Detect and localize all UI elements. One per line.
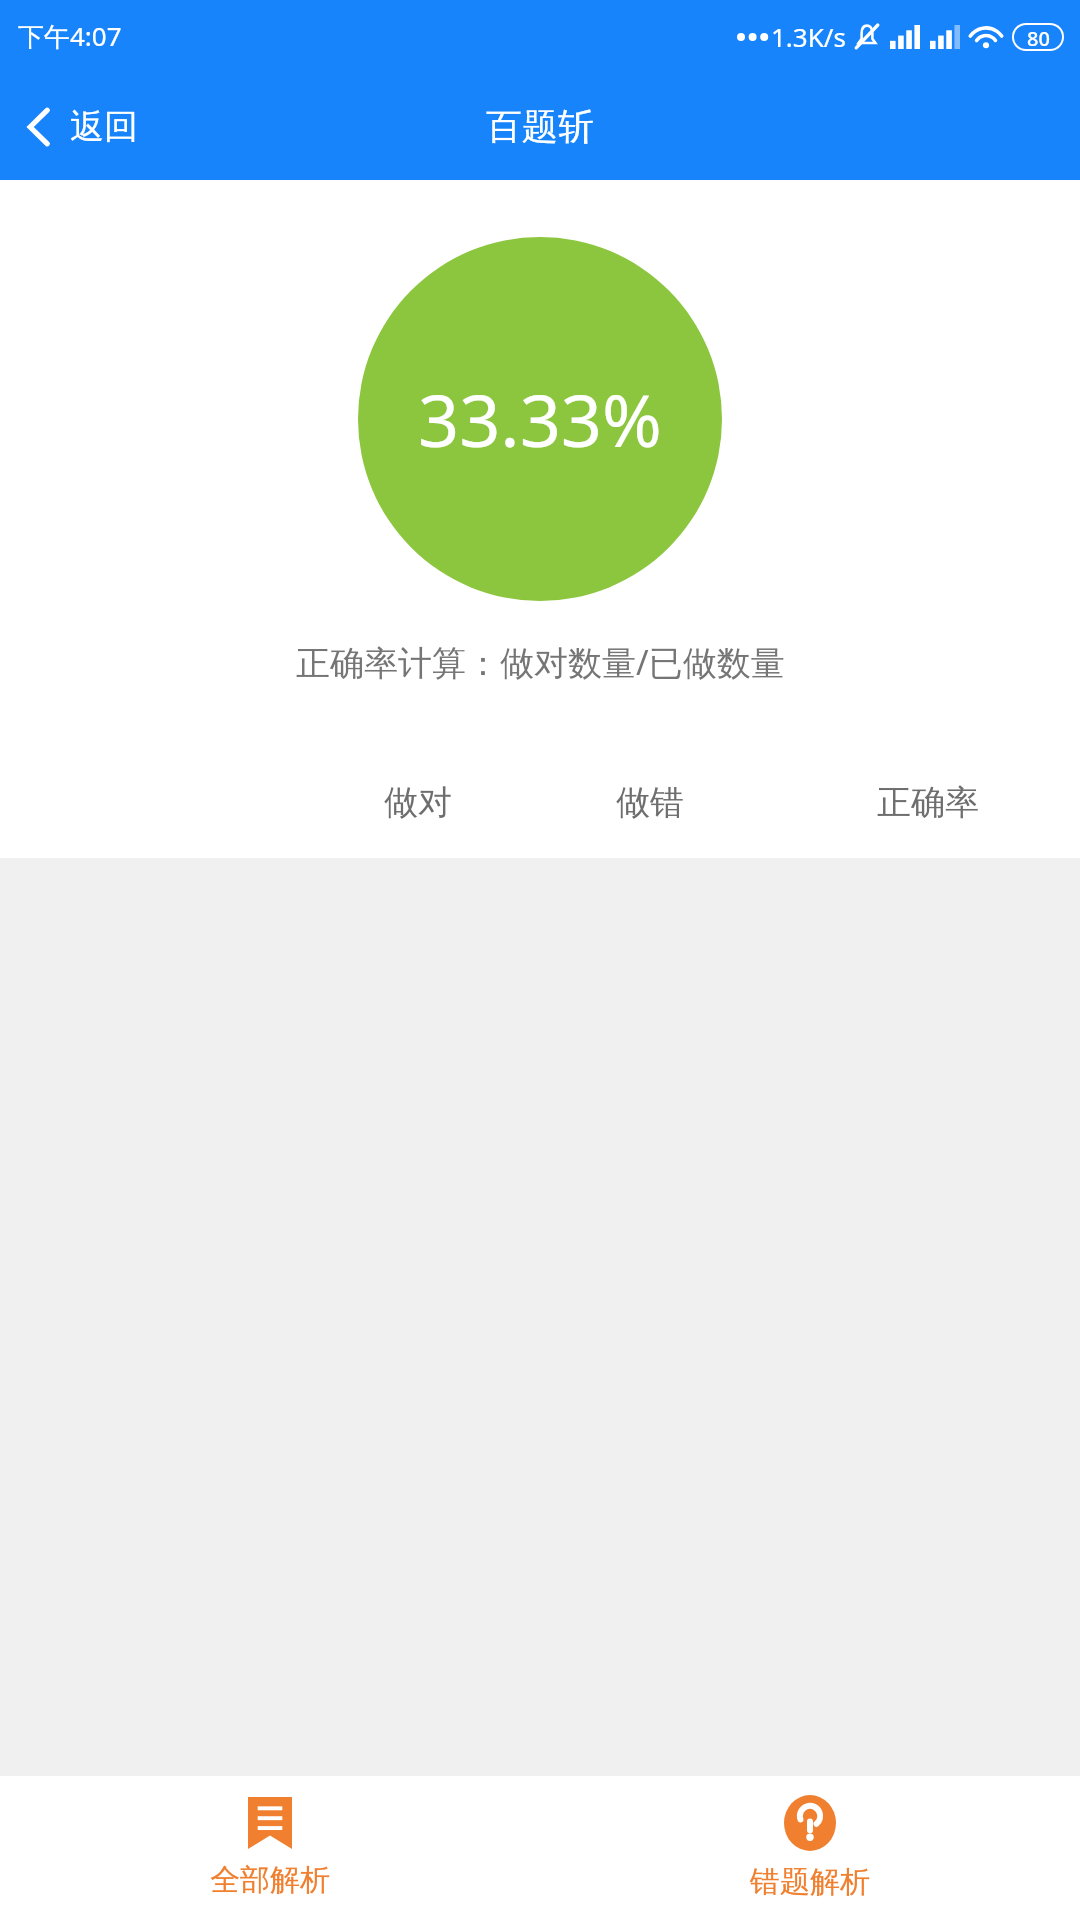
staticText: 1.3K/s [771,19,846,54]
button[interactable]: 错题解析 [540,1776,1080,1920]
staticText: 下午4:07 [18,18,122,54]
staticText: 百题斩 [486,104,594,149]
staticText: 正确率计算：做对数量/已做数量 [296,639,785,685]
staticText: 80 [1027,25,1050,49]
staticText: 33.33% [418,370,662,468]
staticText: 做错 [616,781,684,824]
button[interactable]: 返回 [0,91,162,162]
staticText: 返回 [70,105,138,148]
staticText: 错题解析 [750,1863,870,1901]
staticText: 做对 [384,781,452,824]
button[interactable]: 全部解析 [0,1776,540,1920]
staticText: 正确率 [877,781,979,824]
staticText: 全部解析 [210,1861,330,1899]
